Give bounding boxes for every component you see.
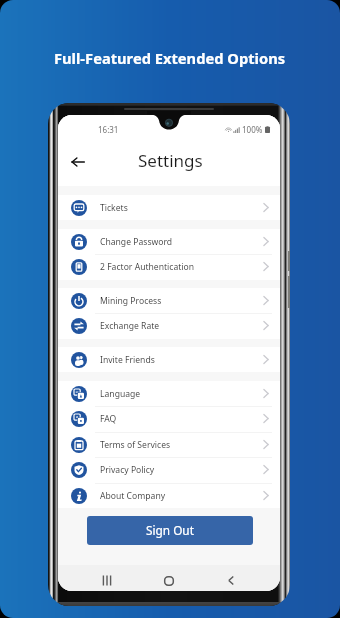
button[interactable]: FAQ: [58, 406, 280, 431]
staticText: 16:31: [98, 124, 119, 135]
button[interactable]: Back: [219, 569, 242, 591]
button[interactable]: Back: [66, 150, 90, 174]
button[interactable]: Sign Out: [87, 516, 253, 545]
button[interactable]: Home: [157, 569, 180, 591]
button[interactable]: Exchange Rate: [58, 313, 280, 338]
staticText: FAQ: [100, 413, 117, 425]
staticText: Tickets: [100, 202, 128, 214]
staticText: 2 Factor Authentication: [100, 261, 195, 273]
staticText: Language: [100, 388, 141, 400]
button[interactable]: 2 Factor Authentication: [58, 254, 280, 279]
button[interactable]: Change Password: [58, 229, 280, 254]
staticText: Full-Featured Extended Options: [54, 48, 286, 68]
button[interactable]: Invite Friends: [58, 347, 280, 372]
staticText: Mining Process: [100, 295, 162, 307]
button[interactable]: Terms of Services: [58, 432, 280, 457]
staticText: About Company: [100, 490, 166, 502]
button[interactable]: Recents: [95, 569, 118, 591]
button[interactable]: Language: [58, 381, 280, 406]
staticText: 100%: [242, 124, 263, 135]
button[interactable]: Privacy Policy: [58, 457, 280, 482]
staticText: Sign Out: [146, 522, 194, 538]
staticText: Change Password: [100, 236, 173, 248]
staticText: Privacy Policy: [100, 464, 155, 476]
staticText: Invite Friends: [100, 354, 155, 366]
button[interactable]: About Company: [58, 483, 280, 508]
button[interactable]: Tickets: [58, 195, 280, 220]
staticText: Terms of Services: [100, 439, 171, 451]
staticText: Settings: [138, 149, 203, 172]
button[interactable]: Mining Process: [58, 288, 280, 313]
staticText: Exchange Rate: [100, 320, 160, 332]
